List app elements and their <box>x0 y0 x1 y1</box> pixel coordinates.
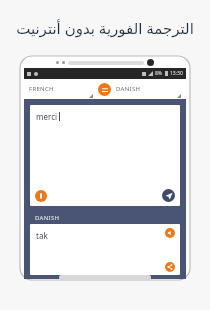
staticText: DANISH <box>35 214 60 222</box>
button[interactable]: FRENCH <box>29 79 93 99</box>
staticText: tak <box>36 230 48 241</box>
staticText: DANISH <box>116 85 141 93</box>
staticText: 8% <box>155 70 163 77</box>
button[interactable]: merci <box>30 105 180 206</box>
button[interactable]: Translate <box>162 189 175 202</box>
staticText: الترجمة الفورية بدون أنترنيت <box>16 18 194 38</box>
button[interactable]: Record voice <box>35 190 47 202</box>
staticText: FRENCH <box>29 85 54 93</box>
button[interactable]: tak <box>30 224 180 275</box>
button[interactable]: Speak translation <box>165 228 175 238</box>
staticText: merci <box>36 111 58 122</box>
staticText: 13:30 <box>170 70 183 77</box>
button[interactable]: Swap languages <box>98 83 111 96</box>
button[interactable]: DANISH <box>116 79 181 99</box>
button[interactable]: Share translation <box>165 262 175 272</box>
